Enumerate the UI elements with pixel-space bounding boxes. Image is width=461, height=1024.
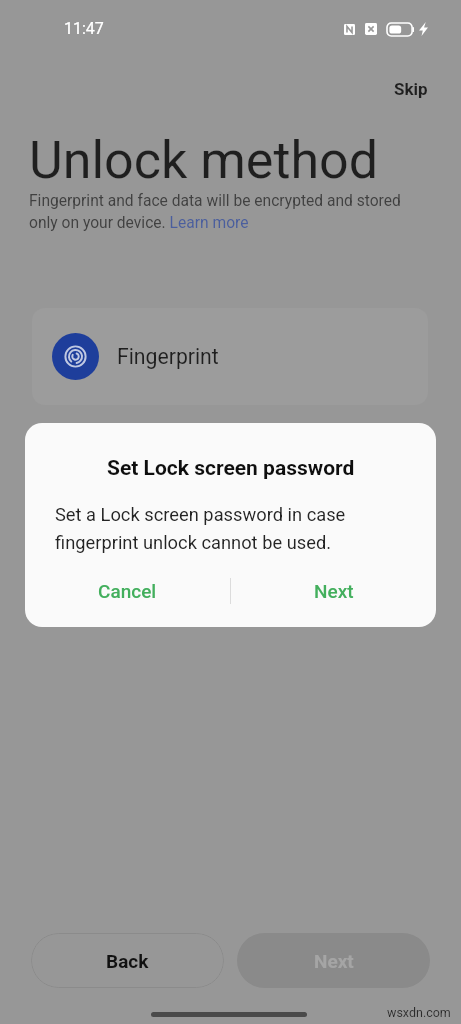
staticText: 11:47 (64, 19, 104, 38)
staticText: Set a Lock screen password in case finge… (55, 504, 414, 554)
staticText: Next (314, 950, 354, 972)
staticText: wsxdn.com (387, 1005, 451, 1020)
button[interactable]: Skip (386, 75, 436, 103)
other: Charging (419, 22, 428, 36)
button[interactable]: Cancel (25, 566, 230, 616)
staticText: Fingerprint and face data will be encryp… (29, 192, 419, 232)
other: Battery (387, 23, 414, 36)
staticText: Set Lock screen password (107, 456, 355, 481)
staticText: Back (106, 950, 149, 972)
other: NFC (344, 24, 355, 35)
staticText: Cancel (98, 580, 157, 602)
staticText: Next (314, 580, 354, 602)
staticText: Fingerprint (117, 344, 219, 369)
button[interactable]: Next (231, 566, 436, 616)
staticText: Skip (394, 79, 428, 99)
button[interactable]: Next (237, 933, 430, 988)
button[interactable]: Back (31, 933, 224, 988)
other: Silent mode (365, 23, 377, 35)
staticText: Unlock method (29, 130, 379, 191)
button[interactable]: Fingerprint (32, 308, 428, 405)
